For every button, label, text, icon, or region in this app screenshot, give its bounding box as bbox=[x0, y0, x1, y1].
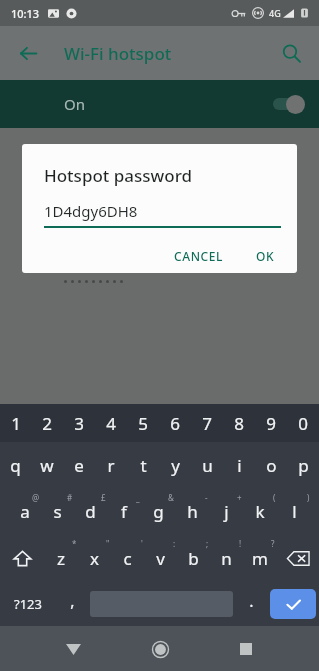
button[interactable]: p bbox=[287, 442, 319, 488]
staticText: £ bbox=[101, 492, 106, 503]
button[interactable]: 2 bbox=[31, 404, 63, 442]
button[interactable]: z bbox=[44, 534, 78, 582]
button[interactable]: 5 bbox=[127, 404, 159, 442]
staticText: k bbox=[255, 500, 265, 523]
button[interactable]: u bbox=[191, 442, 223, 488]
staticText: . bbox=[249, 590, 254, 612]
button[interactable]: , bbox=[56, 582, 88, 626]
button[interactable]: OK bbox=[248, 242, 283, 270]
button[interactable]: y bbox=[159, 442, 191, 488]
staticText: , bbox=[70, 590, 75, 612]
button[interactable]: 8 bbox=[223, 404, 255, 442]
staticText: ?123 bbox=[14, 595, 42, 613]
staticText: 2 bbox=[42, 412, 52, 435]
button[interactable]: d bbox=[74, 488, 107, 534]
button[interactable]: g bbox=[141, 488, 175, 534]
staticText: 8 bbox=[234, 412, 244, 435]
staticText: x bbox=[90, 547, 99, 570]
button[interactable]: Enter bbox=[270, 589, 316, 619]
button[interactable]: h bbox=[175, 488, 209, 534]
staticText: & bbox=[168, 492, 174, 503]
staticText: o bbox=[266, 454, 277, 477]
button[interactable]: Back bbox=[54, 630, 92, 668]
button[interactable]: f bbox=[107, 488, 141, 534]
staticText: 1D4dgy6DH8 bbox=[44, 201, 138, 221]
staticText: # bbox=[67, 492, 73, 503]
staticText: ( bbox=[273, 492, 276, 503]
staticText: v bbox=[156, 547, 165, 570]
button[interactable]: t bbox=[127, 442, 159, 488]
staticText: 7 bbox=[202, 412, 212, 435]
button[interactable]: b bbox=[177, 534, 210, 582]
button[interactable]: On bbox=[0, 80, 319, 128]
button[interactable]: 7 bbox=[191, 404, 223, 442]
staticText: " bbox=[106, 538, 110, 549]
button[interactable]: 6 bbox=[159, 404, 191, 442]
staticText: On bbox=[64, 94, 85, 114]
button[interactable]: 4 bbox=[95, 404, 127, 442]
button[interactable]: Backspace bbox=[276, 534, 319, 582]
staticText: m bbox=[252, 547, 268, 570]
button[interactable]: l bbox=[277, 488, 311, 534]
button[interactable]: 1 bbox=[0, 404, 31, 442]
button[interactable]: Home bbox=[141, 630, 179, 668]
staticText: 0 bbox=[298, 412, 308, 435]
button[interactable]: ?123 bbox=[0, 582, 56, 626]
staticText: d bbox=[85, 500, 96, 523]
staticText: q bbox=[10, 454, 21, 477]
button[interactable]: i bbox=[223, 442, 255, 488]
button[interactable]: n bbox=[210, 534, 243, 582]
button[interactable]: Search bbox=[271, 33, 311, 73]
staticText: t bbox=[140, 454, 147, 477]
staticText: 4G bbox=[269, 7, 281, 19]
button[interactable]: q bbox=[0, 442, 31, 488]
staticText: 5 bbox=[138, 412, 148, 435]
button[interactable]: j bbox=[209, 488, 243, 534]
button[interactable]: m bbox=[243, 534, 276, 582]
button[interactable]: 0 bbox=[287, 404, 319, 442]
staticText: ' bbox=[141, 538, 143, 549]
button[interactable]: s bbox=[41, 488, 74, 534]
button[interactable]: e bbox=[63, 442, 95, 488]
staticText: Hotspot password bbox=[44, 164, 193, 187]
button[interactable]: o bbox=[255, 442, 287, 488]
button[interactable]: Recent apps bbox=[227, 630, 265, 668]
button[interactable]: w bbox=[31, 442, 63, 488]
staticText: CANCEL bbox=[174, 248, 224, 264]
button[interactable]: r bbox=[95, 442, 127, 488]
staticText: b bbox=[188, 547, 199, 570]
staticText: AndroidAP bbox=[64, 169, 124, 185]
staticText: Wi-Fi hotspot bbox=[64, 42, 172, 65]
button[interactable]: CANCEL bbox=[166, 242, 232, 270]
staticText: z bbox=[57, 547, 65, 570]
button[interactable]: Back bbox=[8, 33, 48, 73]
staticText: f bbox=[121, 500, 127, 523]
staticText: _ bbox=[136, 492, 140, 503]
button[interactable]: a bbox=[8, 488, 41, 534]
staticText: OK bbox=[256, 248, 275, 264]
staticText: ) bbox=[307, 492, 310, 503]
button[interactable]: . bbox=[235, 582, 267, 626]
button[interactable]: k bbox=[243, 488, 277, 534]
staticText: 3 bbox=[74, 412, 84, 435]
staticText: i bbox=[237, 454, 242, 477]
button[interactable]: x bbox=[78, 534, 111, 582]
button[interactable]: Shift bbox=[0, 534, 44, 582]
staticText: j bbox=[224, 500, 229, 523]
button[interactable]: c bbox=[111, 534, 144, 582]
staticText: : bbox=[173, 538, 176, 549]
button[interactable]: 9 bbox=[255, 404, 287, 442]
staticText: e bbox=[74, 454, 84, 477]
staticText: p bbox=[298, 454, 309, 477]
staticText: u bbox=[202, 454, 213, 477]
staticText: 6 bbox=[170, 412, 180, 435]
staticText: n bbox=[221, 547, 232, 570]
button[interactable]: 3 bbox=[63, 404, 95, 442]
staticText: r bbox=[107, 454, 115, 477]
staticText: ; bbox=[206, 538, 209, 549]
staticText: w bbox=[40, 454, 54, 477]
button[interactable]: v bbox=[144, 534, 177, 582]
staticText: 9 bbox=[266, 412, 276, 435]
staticText: s bbox=[53, 500, 62, 523]
